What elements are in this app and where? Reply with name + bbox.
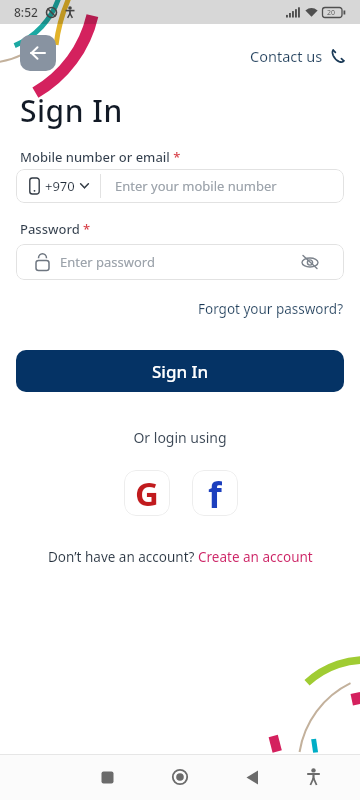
staticText: +970 xyxy=(45,177,75,195)
button[interactable] xyxy=(172,769,188,785)
button[interactable] xyxy=(20,35,56,71)
staticText: Sign In xyxy=(20,90,123,131)
button[interactable] xyxy=(246,770,259,785)
button[interactable]: Sign In xyxy=(16,350,344,392)
staticText: Password * xyxy=(20,220,91,238)
button[interactable]: +970 xyxy=(16,169,344,203)
staticText: G xyxy=(135,471,159,516)
staticText: Enter your mobile number xyxy=(115,177,277,195)
staticText: Contact us xyxy=(250,46,323,66)
staticText: 8:52 xyxy=(14,4,38,20)
button[interactable]: Create an account xyxy=(198,548,313,566)
staticText: 20 xyxy=(327,8,336,18)
staticText: Or login using xyxy=(0,428,360,447)
button[interactable] xyxy=(306,768,321,786)
button[interactable]: Forgot your password? xyxy=(198,300,344,318)
button[interactable]: Contact us xyxy=(250,46,346,66)
staticText: f xyxy=(208,470,222,516)
button[interactable]: Enter password xyxy=(16,244,344,280)
button[interactable] xyxy=(101,771,114,784)
staticText: Enter password xyxy=(60,253,155,271)
button[interactable]: f xyxy=(192,470,238,516)
staticText: Mobile number or email * xyxy=(20,148,181,166)
button[interactable]: G xyxy=(124,470,170,516)
staticText: Sign In xyxy=(152,360,209,383)
staticText: Don’t have an account? xyxy=(48,548,198,566)
